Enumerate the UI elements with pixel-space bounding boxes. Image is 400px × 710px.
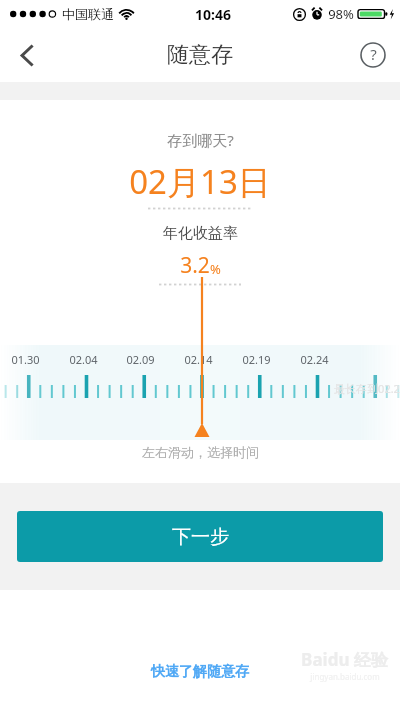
staticText: 01.30 [11, 352, 40, 367]
staticText: 快速了解随意存 [151, 663, 249, 681]
staticText: 02.24 [300, 352, 329, 367]
button[interactable]: 下一步 [17, 511, 383, 562]
staticText: 02.14 [184, 352, 213, 367]
staticText: 02月13日 [129, 159, 271, 204]
staticText: 02.09 [126, 352, 155, 367]
staticText: 年化收益率 [163, 224, 238, 243]
staticText: 随意存 [167, 41, 233, 69]
button[interactable]: Help [346, 28, 400, 82]
staticText: ? [370, 44, 377, 64]
staticText: 10:46 [195, 5, 231, 24]
staticText: jingyan.baidu.com [310, 671, 380, 682]
staticText: 02.19 [242, 352, 271, 367]
staticText: 左右滑动，选择时间 [142, 444, 259, 460]
staticText: 02.04 [69, 352, 98, 367]
staticText: 下一步 [172, 525, 229, 549]
staticText: 存到哪天? [167, 130, 234, 150]
staticText: 3.2 [180, 251, 210, 280]
staticText: 中国联通 [62, 6, 114, 22]
button[interactable]: 快速了解随意存 [139, 658, 261, 686]
staticText: % [210, 260, 221, 278]
staticText: 98% [328, 5, 354, 23]
button[interactable]: Back [0, 28, 54, 82]
staticText: Baidu 经验 [301, 648, 388, 671]
staticText: 最长存到02.2 [334, 381, 400, 396]
